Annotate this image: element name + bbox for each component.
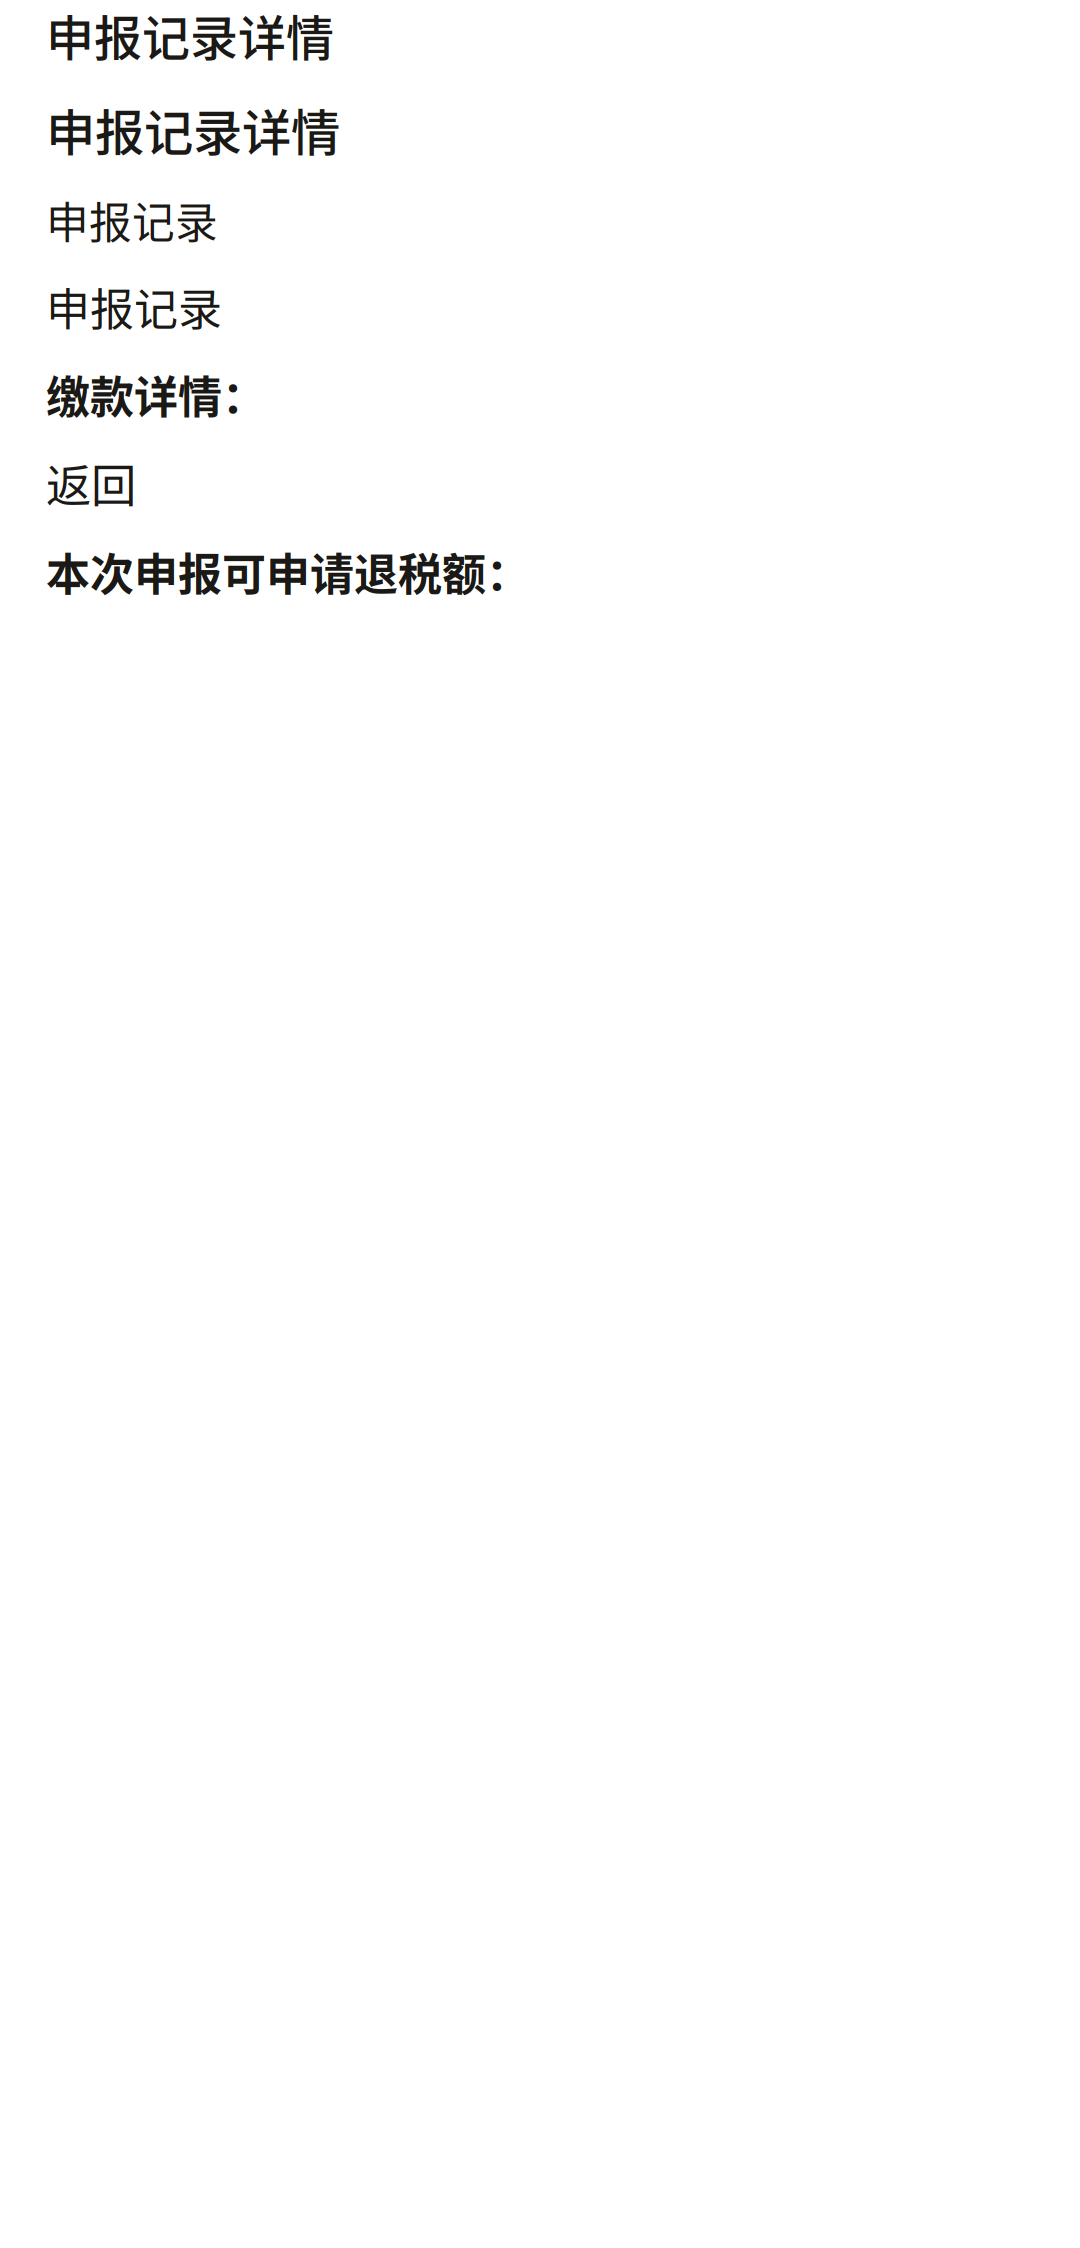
- staticText: 缴款详情：: [46, 362, 266, 426]
- staticText: 申报记录: [46, 189, 218, 251]
- staticText: 返回: [46, 450, 136, 516]
- staticText: 本次申报可申请退税额：: [46, 540, 530, 603]
- staticText: 申报记录详情: [46, 93, 340, 165]
- staticText: 申报记录详情: [46, 0, 334, 69]
- staticText: 申报记录: [46, 275, 222, 338]
